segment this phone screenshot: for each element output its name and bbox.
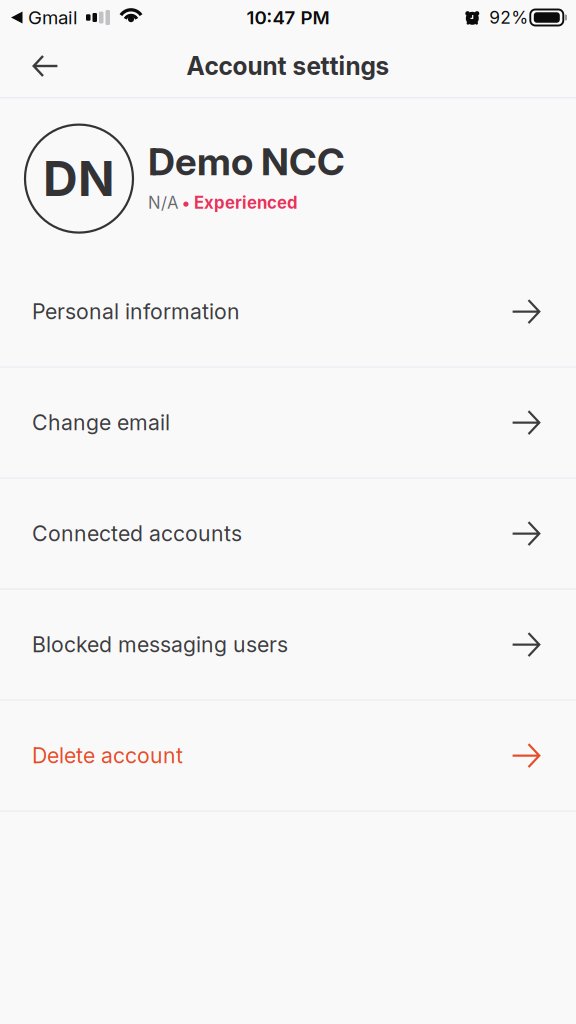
button[interactable]: Change email — [0, 368, 576, 479]
staticText: Change email — [32, 410, 170, 435]
staticText: Account settings — [186, 51, 389, 81]
staticText: DN — [43, 150, 115, 208]
staticText: • — [178, 192, 194, 213]
staticText: Gmail — [28, 6, 78, 29]
staticText: Delete account — [32, 743, 183, 768]
staticText: N/A — [148, 192, 178, 213]
staticText: Connected accounts — [32, 521, 242, 546]
staticText: 92% — [489, 7, 528, 28]
button[interactable]: Blocked messaging users — [0, 590, 576, 701]
button[interactable]: Personal information — [0, 257, 576, 368]
staticText: Demo NCC — [148, 138, 345, 184]
staticText: Personal information — [32, 299, 240, 324]
button[interactable]: Delete account — [0, 701, 576, 812]
staticText: Experienced — [194, 192, 298, 213]
button[interactable]: Connected accounts — [0, 479, 576, 590]
staticText: 10:47 PM — [246, 6, 329, 29]
staticText: Blocked messaging users — [32, 632, 288, 657]
button[interactable]: Back — [0, 44, 74, 88]
